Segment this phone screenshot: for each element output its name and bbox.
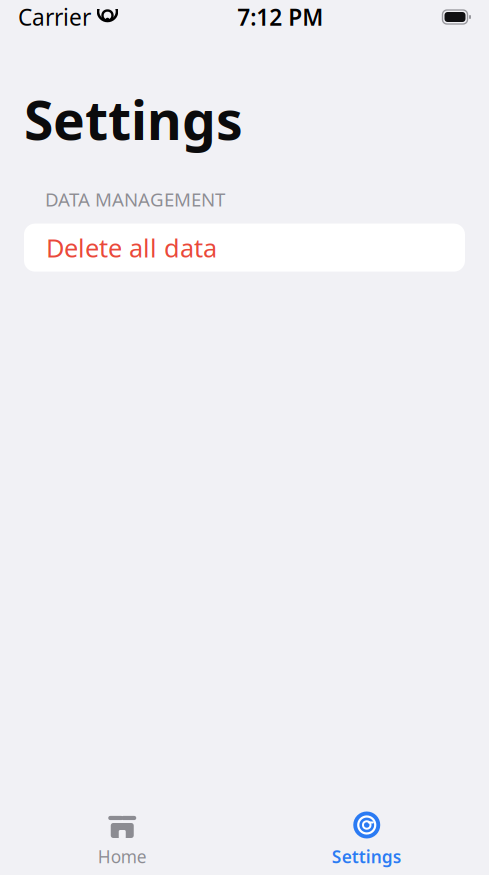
staticText: Carrier [18,2,91,32]
staticText: 7:12 PM [237,2,323,32]
staticText: DATA MANAGEMENT [45,187,225,212]
staticText: Settings [24,84,243,155]
button[interactable]: Settings [244,808,489,870]
button[interactable]: Home [0,808,244,870]
staticText: Delete all data [46,231,217,264]
button[interactable]: Delete all data [24,224,465,272]
staticText: Home [98,845,147,868]
staticText: Settings [332,845,402,868]
